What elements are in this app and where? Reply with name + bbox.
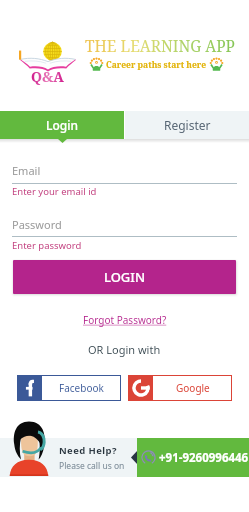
- staticText: Facebook: [59, 381, 104, 395]
- button[interactable]: Register: [125, 111, 249, 139]
- staticText: Enter your email id: [12, 185, 97, 198]
- staticText: LOGIN: [104, 268, 146, 286]
- staticText: Enter password: [12, 239, 82, 252]
- staticText: Register: [164, 117, 211, 133]
- staticText: Please call us on: [59, 460, 125, 472]
- button[interactable]: Facebook: [17, 375, 121, 401]
- button[interactable]: Forgot Password?: [83, 313, 167, 327]
- staticText: +91-9260996446: [159, 450, 249, 466]
- staticText: THE LEARNING APP: [85, 35, 235, 56]
- staticText: Login: [46, 117, 78, 133]
- button[interactable]: Login: [0, 111, 124, 139]
- staticText: Password: [12, 217, 62, 232]
- button[interactable]: Google: [128, 375, 232, 401]
- staticText: Q&A: [31, 67, 64, 86]
- button[interactable]: Call: [137, 438, 249, 477]
- staticText: Career paths start here: [106, 59, 207, 71]
- staticText: Google: [176, 381, 210, 395]
- other: Call: [141, 450, 157, 466]
- button[interactable]: LOGIN: [13, 260, 236, 294]
- staticText: Need Help?: [59, 444, 117, 457]
- staticText: OR Login with: [88, 342, 161, 357]
- staticText: Email: [12, 163, 41, 178]
